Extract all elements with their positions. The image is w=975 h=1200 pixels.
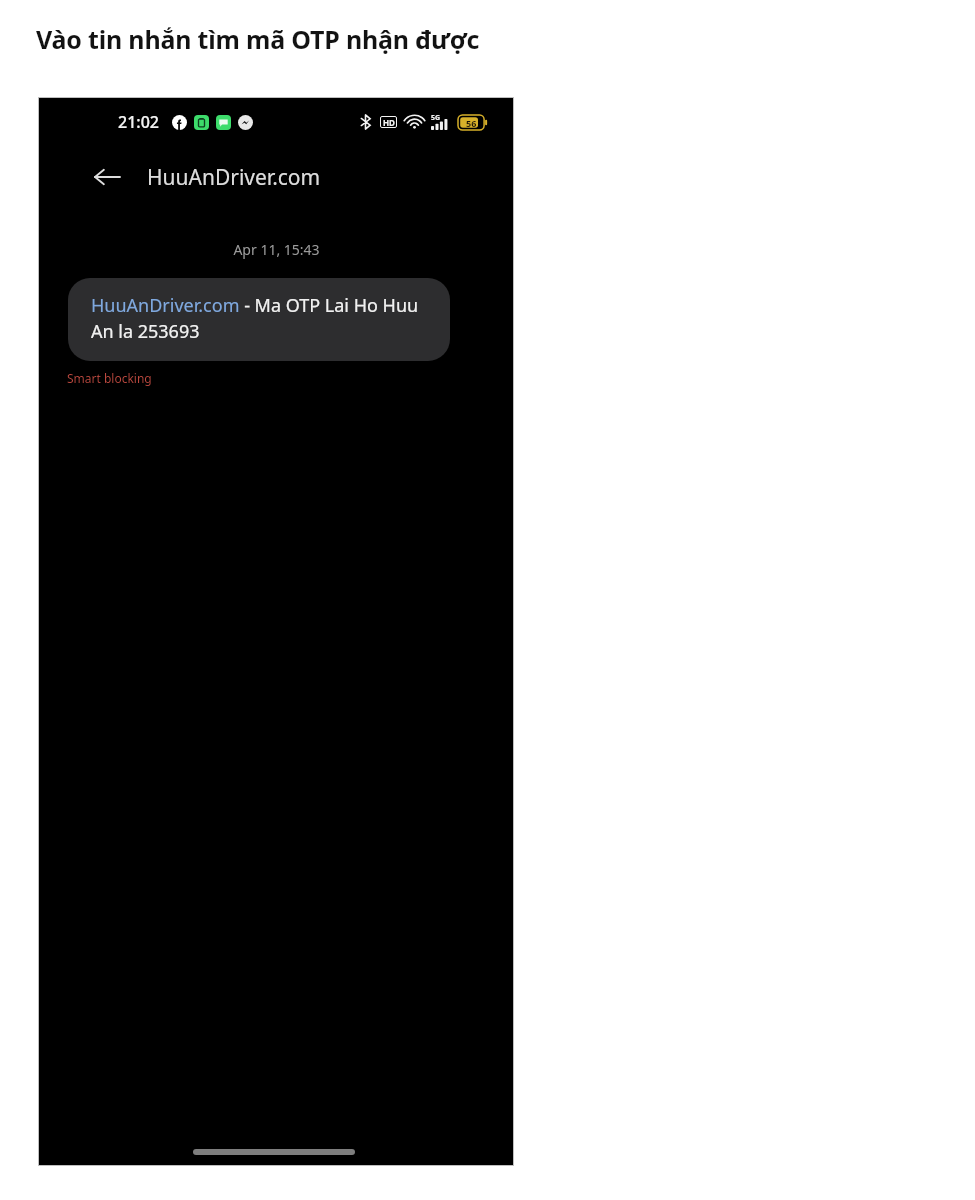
staticText: HuuAnDriver.com - Ma OTP Lai Ho Huu An l…	[91, 293, 430, 344]
staticText: Apr 11, 15:43	[233, 240, 320, 259]
button[interactable]: Back	[90, 160, 124, 194]
button[interactable]: HuuAnDriver.com - Ma OTP Lai Ho Huu An l…	[68, 278, 450, 361]
staticText: Vào tin nhắn tìm mã OTP nhận được	[36, 22, 480, 56]
staticText: 56	[466, 117, 477, 129]
staticText: HD	[383, 117, 395, 128]
staticText: HuuAnDriver.com	[147, 163, 321, 192]
staticText: 21:02	[118, 111, 159, 133]
staticText: 5G	[431, 113, 441, 123]
button[interactable]: Smart blocking	[67, 370, 152, 386]
